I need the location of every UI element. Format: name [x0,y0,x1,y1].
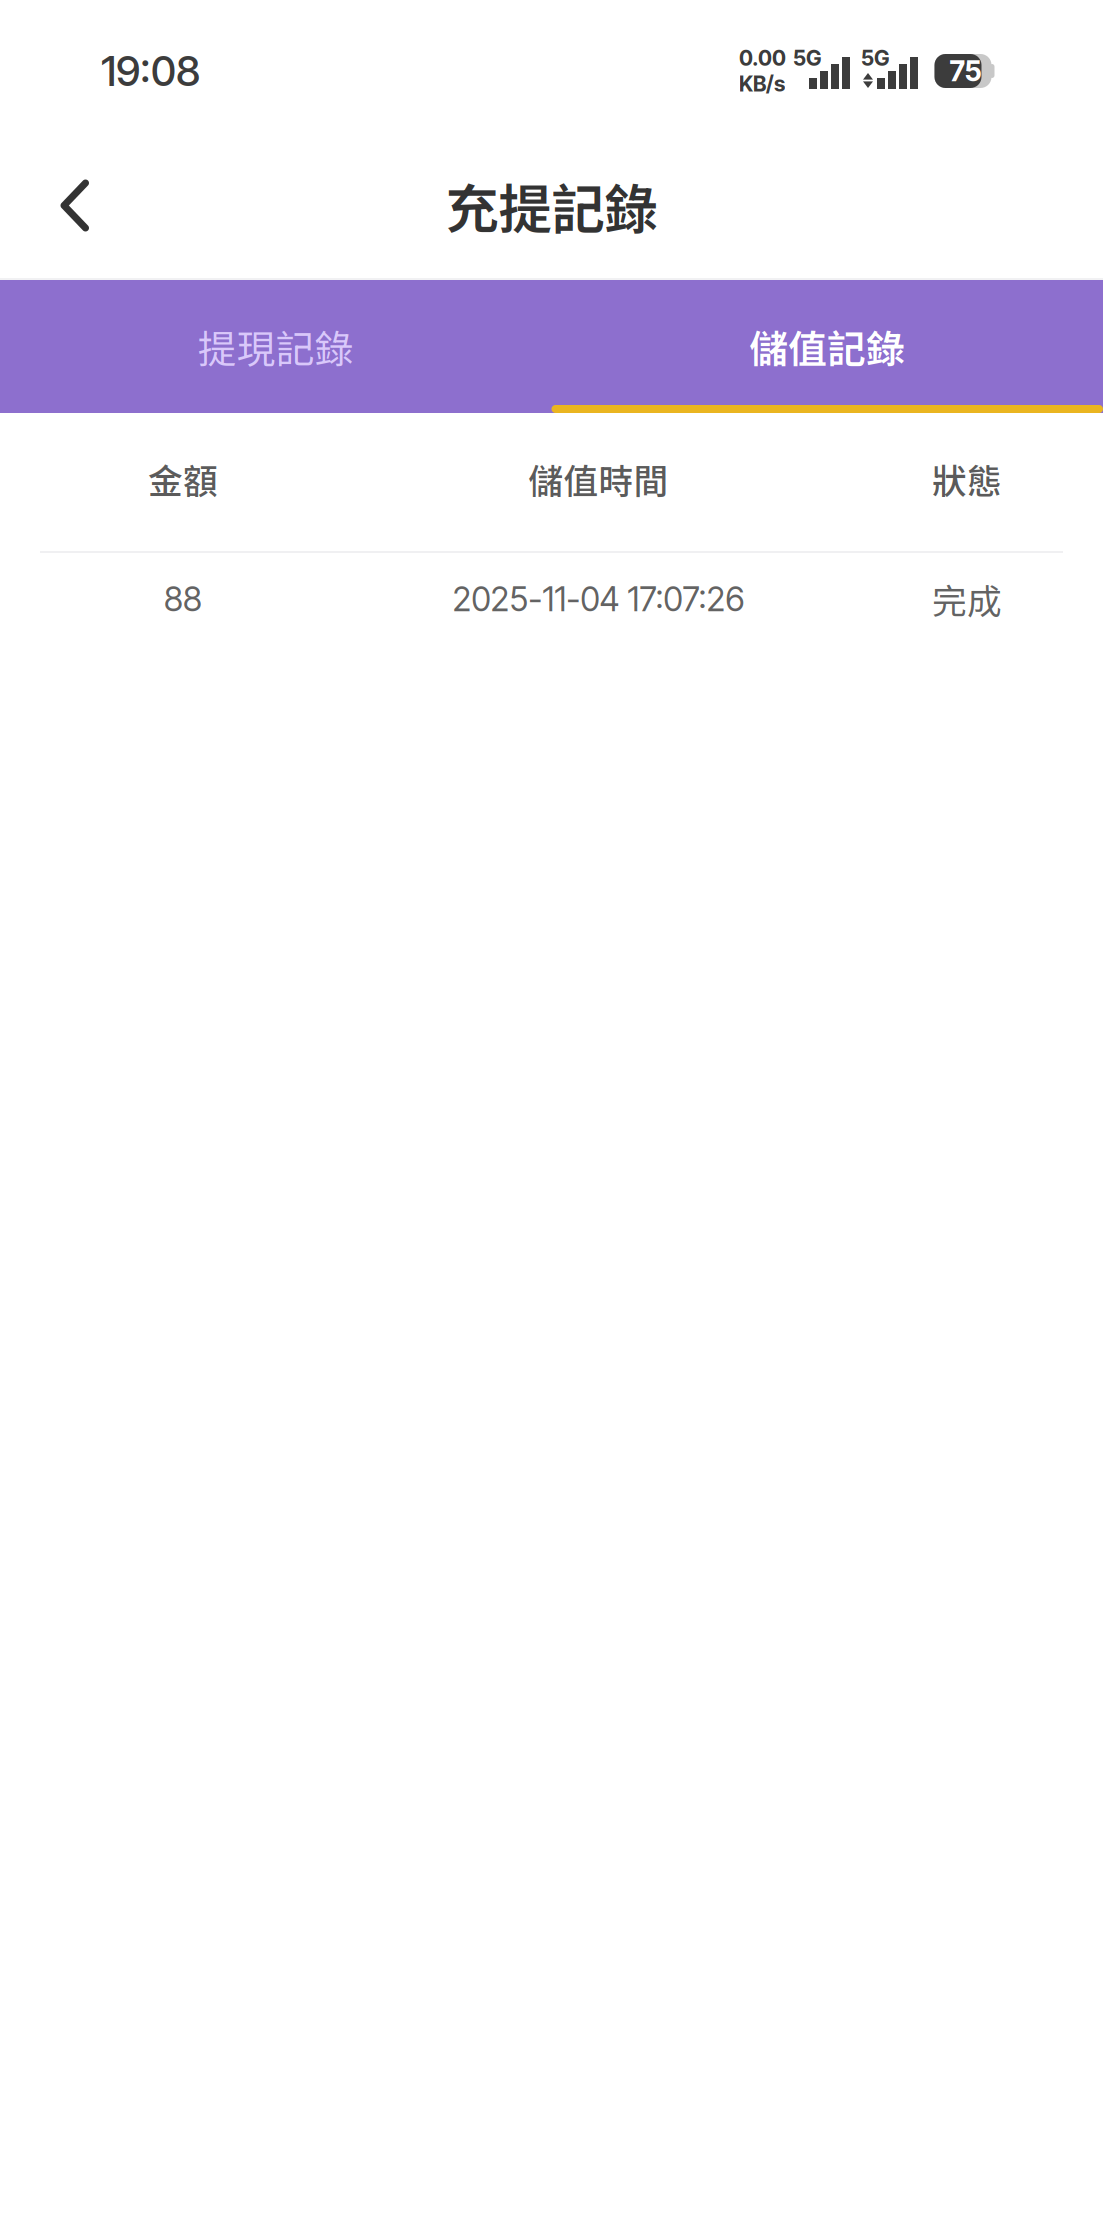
staticText: 儲值記錄 [749,318,905,374]
staticText: 充提記錄 [445,167,657,244]
staticText: 19:08 [101,46,200,96]
staticText: 金額 [148,454,218,504]
button[interactable]: 提現記錄 [0,280,551,413]
staticText: 5G [793,45,822,71]
staticText: 2025-11-04 17:07:26 [452,579,744,619]
staticText: 狀態 [932,454,1002,504]
button[interactable]: Back [0,133,149,278]
staticText: 0.00 [739,45,786,71]
staticText: 儲值時間 [528,454,668,504]
staticText: 75 [949,54,981,88]
button[interactable]: 儲值記錄 [551,280,1103,413]
staticText: 完成 [932,574,1002,624]
staticText: KB/s [739,71,785,97]
staticText: 5G [861,45,890,71]
staticText: 88 [164,579,202,619]
staticText: 提現記錄 [198,318,354,374]
